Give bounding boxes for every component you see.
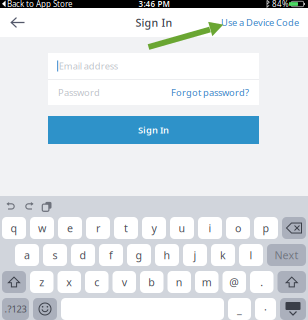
staticText: h <box>163 248 170 262</box>
button[interactable]: Shift <box>277 271 306 293</box>
staticText: a <box>24 248 30 262</box>
staticText: Email address <box>59 60 118 72</box>
button[interactable]: a <box>15 244 39 266</box>
staticText: 84% <box>272 0 289 9</box>
staticText: Forgot password? <box>171 86 249 99</box>
button[interactable]: d <box>71 244 95 266</box>
button[interactable]: Next <box>267 244 306 266</box>
button[interactable]: l <box>239 244 263 266</box>
staticText: .?123 <box>4 303 26 315</box>
button[interactable]: j <box>183 244 207 266</box>
staticText: d <box>79 248 86 262</box>
button[interactable]: @ <box>222 271 246 293</box>
staticText: o <box>235 221 241 235</box>
staticText: g <box>135 248 142 262</box>
button[interactable]: Sign In <box>48 116 259 144</box>
button[interactable]: b <box>140 271 163 293</box>
button[interactable]: c <box>85 271 108 293</box>
staticText: m <box>202 275 212 289</box>
staticText: z <box>39 275 44 289</box>
button[interactable]: Redo <box>24 198 34 214</box>
button[interactable]: z <box>30 271 53 293</box>
staticText: r <box>96 221 100 235</box>
button[interactable]: x <box>57 271 81 293</box>
staticText: p <box>262 221 269 235</box>
staticText: w <box>38 221 46 235</box>
staticText: t <box>124 221 128 235</box>
button[interactable]: n <box>167 271 191 293</box>
staticText: c <box>94 275 99 289</box>
button[interactable]: f <box>99 244 123 266</box>
button[interactable]: e <box>58 217 82 239</box>
staticText: Password <box>58 86 100 99</box>
button[interactable]: r <box>86 217 110 239</box>
staticText: q <box>10 221 17 235</box>
button[interactable]: _ <box>228 298 251 320</box>
staticText: e <box>67 221 73 235</box>
button[interactable]: Shift <box>2 271 26 293</box>
button[interactable]: t <box>114 217 138 239</box>
button[interactable]: p <box>254 217 278 239</box>
button[interactable]: Back <box>6 12 30 33</box>
button[interactable]: m <box>195 271 218 293</box>
button[interactable]: o <box>226 217 250 239</box>
staticText: b <box>148 275 155 289</box>
button[interactable]: k <box>211 244 235 266</box>
button[interactable]: Hide keyboard <box>280 298 306 320</box>
button[interactable]: q <box>2 217 26 239</box>
staticText: Sign In <box>135 15 172 30</box>
staticText: 3:46 PM <box>138 0 169 9</box>
button[interactable]: . <box>250 271 273 293</box>
staticText: u <box>178 221 185 235</box>
staticText: n <box>176 275 183 289</box>
button[interactable]: Undo <box>6 198 16 214</box>
staticText: v <box>122 275 127 289</box>
staticText: i <box>208 221 211 235</box>
staticText: l <box>249 248 252 262</box>
staticText: s <box>52 248 57 262</box>
staticText: @ <box>229 275 239 289</box>
button[interactable]: Paste <box>42 198 52 214</box>
button[interactable]: s <box>43 244 67 266</box>
button[interactable]: Backspace <box>282 217 306 239</box>
staticText: Next <box>274 248 298 262</box>
staticText: y <box>151 221 156 235</box>
staticText: _ <box>237 302 242 316</box>
button[interactable]: i <box>198 217 222 239</box>
button[interactable]: u <box>170 217 194 239</box>
button[interactable]: · <box>255 298 276 320</box>
staticText: Back to App Store <box>7 0 73 9</box>
button[interactable]: h <box>155 244 179 266</box>
button[interactable]: Emoji <box>33 298 57 320</box>
staticText: x <box>66 275 72 289</box>
button[interactable]: v <box>112 271 136 293</box>
button[interactable]: Use a Device Code <box>218 11 302 34</box>
button[interactable]: w <box>30 217 54 239</box>
staticText: . <box>260 275 263 289</box>
staticText: Sign In <box>138 124 169 136</box>
staticText: f <box>109 248 113 262</box>
button[interactable]: g <box>127 244 151 266</box>
staticText: k <box>220 248 226 262</box>
staticText: · <box>264 302 267 316</box>
staticText: j <box>193 248 196 262</box>
staticText: Use a Device Code <box>221 16 299 29</box>
button[interactable]: y <box>142 217 166 239</box>
button[interactable]: .?123 <box>2 298 29 320</box>
button[interactable]: Forgot password? <box>171 86 249 99</box>
